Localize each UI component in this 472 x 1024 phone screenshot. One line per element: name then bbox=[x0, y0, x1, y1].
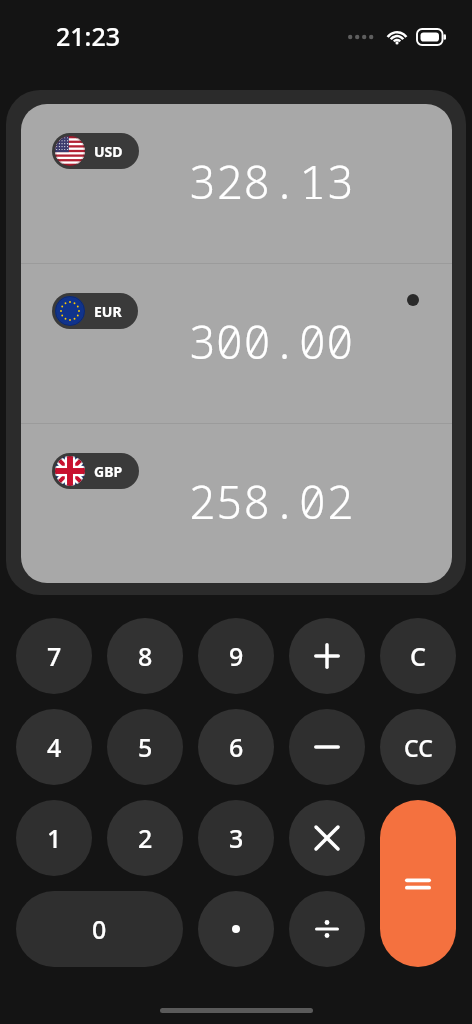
button[interactable]: 2 bbox=[107, 800, 183, 876]
button[interactable]: Decimal point bbox=[198, 891, 274, 967]
staticText: 9 bbox=[229, 639, 244, 673]
staticText: 2 bbox=[138, 821, 153, 855]
staticText: EUR bbox=[94, 302, 122, 321]
button[interactable]: EUR bbox=[55, 293, 122, 329]
button[interactable]: USD bbox=[55, 133, 123, 169]
button[interactable]: Plus bbox=[289, 618, 365, 694]
staticText: 6 bbox=[229, 730, 244, 764]
button[interactable]: 8 bbox=[107, 618, 183, 694]
staticText: 0 bbox=[92, 912, 107, 946]
button[interactable]: C bbox=[380, 618, 456, 694]
staticText: 3 bbox=[229, 821, 244, 855]
staticText: C bbox=[410, 639, 426, 673]
button[interactable]: Multiply bbox=[289, 800, 365, 876]
staticText: GBP bbox=[94, 462, 123, 481]
button[interactable]: CC bbox=[380, 709, 456, 785]
staticText: 300.00 bbox=[188, 310, 354, 373]
staticText: 5 bbox=[138, 730, 153, 764]
staticText: 4 bbox=[47, 730, 62, 764]
staticText: 8 bbox=[138, 639, 153, 673]
staticText: USD bbox=[94, 142, 123, 161]
button[interactable]: EUR bbox=[21, 264, 452, 423]
staticText: CC bbox=[404, 732, 433, 763]
button[interactable]: Minus bbox=[289, 709, 365, 785]
staticText: 328.13 bbox=[188, 150, 354, 213]
staticText: 7 bbox=[47, 639, 62, 673]
button[interactable]: GBP bbox=[21, 424, 452, 583]
button[interactable]: 3 bbox=[198, 800, 274, 876]
button[interactable]: Divide bbox=[289, 891, 365, 967]
button[interactable]: GBP bbox=[55, 453, 123, 489]
staticText: 1 bbox=[47, 821, 62, 855]
staticText: 21:23 bbox=[56, 19, 121, 53]
button[interactable]: Equals bbox=[380, 800, 456, 967]
button[interactable]: 1 bbox=[16, 800, 92, 876]
button[interactable]: 9 bbox=[198, 618, 274, 694]
staticText: 258.02 bbox=[188, 470, 354, 533]
button[interactable]: 6 bbox=[198, 709, 274, 785]
button[interactable]: 7 bbox=[16, 618, 92, 694]
button[interactable]: 5 bbox=[107, 709, 183, 785]
button[interactable]: USD bbox=[21, 104, 452, 263]
button[interactable]: 4 bbox=[16, 709, 92, 785]
button[interactable]: 0 bbox=[16, 891, 183, 967]
